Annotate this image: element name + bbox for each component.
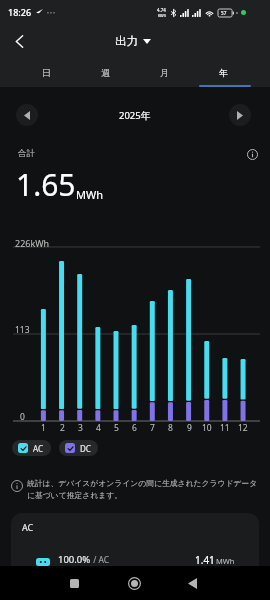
button[interactable]: 月 [135,58,194,87]
staticText: 9 [187,422,192,434]
button[interactable]: DC [59,440,98,456]
staticText: 年 [219,67,228,78]
staticText: AC [33,443,44,454]
staticText: 5 [114,422,119,434]
staticText: 57 [221,10,227,16]
staticText: 2 [60,422,65,434]
button[interactable]: 日 [17,58,76,87]
staticText: 4 [96,422,101,434]
staticText: 統計は、デバイスがオンラインの間に生成されたクラウドデータに基づいて推定されます… [27,478,262,501]
staticText: / AC [91,554,110,566]
button[interactable]: Previous year [16,104,38,126]
staticText: 6 [132,422,137,434]
staticText: 合計 [18,148,35,159]
staticText: 2025年 [119,109,151,122]
button[interactable]: AC [11,513,259,583]
staticText: 7 [150,422,155,434]
staticText: 月 [160,67,169,78]
staticText: MWh [76,187,104,202]
staticText: MWh [216,556,235,566]
staticText: 出力 [115,34,138,48]
staticText: 8 [168,422,173,434]
button[interactable]: Recent apps [60,569,88,597]
staticText: 日 [42,67,51,78]
staticText: 4.74 [157,7,166,13]
staticText: 18:26 [8,6,32,18]
staticText: 226kWh [15,237,50,249]
staticText: 3 [78,422,83,434]
button[interactable]: 週 [76,58,135,87]
button[interactable]: Home [120,569,148,597]
staticText: 11 [220,422,230,434]
button[interactable]: Back [178,569,206,597]
staticText: AC [22,521,34,533]
button[interactable]: Back [6,28,32,54]
button[interactable]: Next year [229,104,251,126]
staticText: 12 [238,422,248,434]
staticText: DC [80,443,91,454]
button[interactable]: 年 [194,58,253,87]
staticText: KB/S [158,13,166,18]
staticText: 10 [202,422,212,434]
staticText: 1 [41,422,46,434]
staticText: 週 [101,67,110,78]
staticText: 1.65 [16,164,76,205]
button[interactable]: Info [244,146,260,162]
staticText: 113 [15,324,30,336]
staticText: 0 [20,411,25,423]
button[interactable]: 出力 [109,30,157,52]
staticText: 1.41 [195,553,215,567]
staticText: 100.0% [58,553,91,566]
button[interactable]: AC [12,440,51,456]
